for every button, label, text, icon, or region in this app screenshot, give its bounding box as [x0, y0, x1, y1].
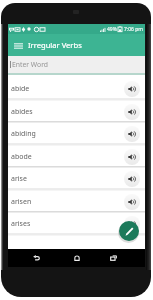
button[interactable]: arisen [8, 190, 145, 213]
button[interactable]: Back [30, 251, 43, 264]
button[interactable]: Menu [8, 34, 28, 56]
button[interactable]: Play pronunciation [124, 126, 140, 142]
staticText: Enter Word [12, 60, 48, 69]
staticText: abode [11, 152, 32, 162]
button[interactable]: Play pronunciation [124, 149, 140, 165]
staticText: arisen [11, 197, 32, 207]
button[interactable]: arises [8, 212, 145, 235]
button[interactable]: Edit [119, 221, 139, 241]
button[interactable]: Play pronunciation [124, 81, 140, 97]
staticText: Irregular Verbs [28, 40, 82, 50]
button[interactable]: abide [8, 77, 145, 100]
button[interactable]: Recents [107, 251, 120, 264]
staticText: arises [11, 219, 31, 229]
button[interactable]: Home [70, 251, 83, 264]
button[interactable]: Play pronunciation [124, 104, 140, 120]
button[interactable]: arise [8, 167, 145, 190]
button[interactable]: abides [8, 100, 145, 123]
button[interactable]: abode [8, 145, 145, 168]
staticText: abiding [11, 129, 36, 139]
staticText: abide [11, 84, 30, 94]
button[interactable]: abiding [8, 122, 145, 145]
staticText: 49% [107, 26, 117, 33]
staticText: arise [11, 174, 27, 184]
button[interactable]: Play pronunciation [124, 171, 140, 187]
button[interactable]: Play pronunciation [124, 194, 140, 210]
staticText: abides [11, 107, 33, 117]
staticText: 7:06 pm [124, 26, 143, 33]
button[interactable]: Play pronunciation [124, 216, 140, 232]
